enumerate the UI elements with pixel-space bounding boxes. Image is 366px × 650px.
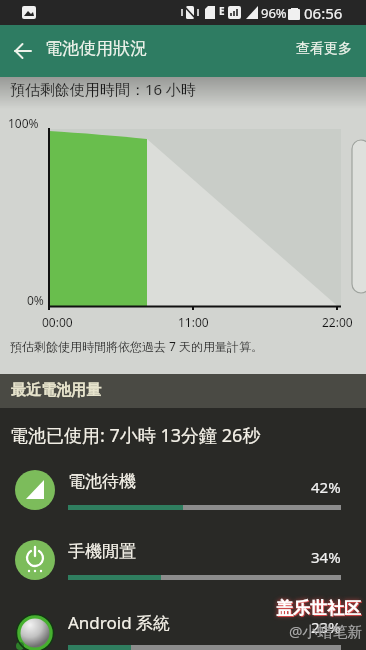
staticText: 盖乐世社区 — [276, 598, 361, 619]
staticText: E — [219, 4, 225, 18]
staticText: 預估剩餘使用時間將依您過去 7 天的用量計算。 — [10, 338, 264, 354]
staticText: 最近電池用量 — [11, 381, 101, 400]
staticText: 電池待機 — [68, 471, 136, 492]
staticText: 22:00 — [322, 314, 353, 330]
staticText: 查看更多 — [296, 40, 352, 58]
staticText: 預估剩餘使用時間：16 小時 — [10, 79, 197, 99]
button[interactable]: 電池待機 — [0, 455, 366, 525]
staticText: 00:00 — [42, 314, 73, 330]
button[interactable]: 查看更多 — [292, 36, 356, 62]
button[interactable]: Android 系統 — [0, 595, 366, 650]
staticText: 42% — [311, 477, 341, 497]
staticText: 100% — [8, 115, 39, 131]
staticText: 盖乐世社区 — [277, 599, 362, 620]
staticText: @小蜡笔新 — [289, 621, 363, 641]
staticText: 11:00 — [178, 314, 209, 330]
staticText: 0% — [27, 292, 44, 308]
staticText: 手機閒置 — [68, 541, 136, 562]
staticText: 34% — [311, 547, 341, 567]
staticText: Android 系統 — [68, 611, 171, 634]
button[interactable] — [0, 25, 46, 77]
staticText: 23% — [311, 617, 341, 637]
button[interactable]: 手機閒置 — [0, 525, 366, 595]
staticText: 06:56 — [304, 3, 343, 23]
staticText: 96% — [261, 4, 287, 22]
staticText: 電池使用狀況 — [45, 38, 147, 59]
staticText: 電池已使用: 7小時 13分鐘 26秒 — [10, 423, 261, 448]
